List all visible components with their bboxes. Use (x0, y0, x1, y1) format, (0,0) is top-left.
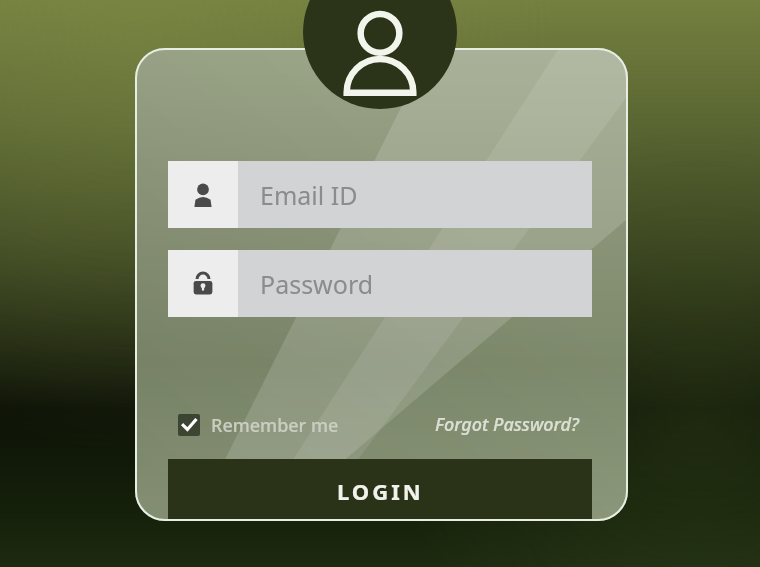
staticText: Forgot Password? (435, 412, 579, 437)
staticText: Remember me (211, 413, 339, 438)
button[interactable]: LOGIN (168, 459, 592, 521)
button[interactable]: Remember me (178, 410, 339, 440)
staticText: LOGIN (337, 476, 424, 506)
button[interactable]: Password (168, 250, 592, 317)
staticText: Email ID (260, 178, 358, 212)
button[interactable]: Profile (303, 0, 457, 109)
button[interactable]: Email ID (168, 161, 592, 228)
button[interactable]: Forgot Password? (435, 408, 579, 440)
staticText: Password (260, 267, 374, 301)
